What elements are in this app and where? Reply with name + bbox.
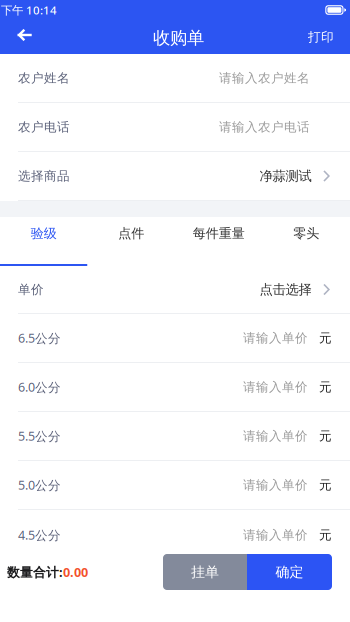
staticText: 请输入农户电话: [219, 119, 310, 135]
staticText: 0.00: [63, 563, 88, 581]
staticText: 打印: [308, 29, 334, 45]
button[interactable]: 点件: [87, 217, 175, 266]
staticText: 点件: [118, 225, 144, 242]
staticText: 农户电话: [18, 119, 70, 135]
staticText: 零头: [293, 225, 319, 242]
staticText: 下午 10:14: [1, 2, 57, 18]
staticText: 请输入单价: [243, 330, 308, 346]
staticText: 5.5公分: [18, 427, 61, 445]
staticText: 请输入单价: [243, 428, 308, 444]
staticText: 6.5公分: [18, 329, 61, 347]
staticText: 选择商品: [18, 168, 70, 184]
button[interactable]: Back: [0, 22, 48, 52]
staticText: 确定: [275, 563, 303, 581]
staticText: 请输入单价: [243, 379, 308, 395]
button[interactable]: 零头: [262, 217, 350, 266]
staticText: 验级: [31, 225, 57, 242]
staticText: 6.0公分: [18, 378, 61, 396]
staticText: 单价: [18, 282, 44, 297]
button[interactable]: 农户姓名: [0, 54, 350, 103]
button[interactable]: 农户电话: [0, 103, 350, 152]
staticText: 请输入单价: [243, 477, 308, 493]
staticText: 点击选择: [259, 281, 311, 298]
staticText: 元: [319, 477, 332, 493]
staticText: 请输入农户姓名: [219, 70, 310, 86]
staticText: 请输入单价: [243, 527, 308, 543]
button[interactable]: 每件重量: [175, 217, 262, 266]
staticText: 净蒜测试: [259, 168, 311, 184]
staticText: 挂单: [191, 563, 219, 581]
button[interactable]: 5.5公分: [0, 412, 350, 461]
button[interactable]: 确定: [247, 554, 332, 590]
staticText: 元: [319, 527, 332, 543]
button[interactable]: 打印: [292, 22, 350, 52]
staticText: 元: [319, 428, 332, 444]
staticText: 数量合计:: [7, 563, 63, 581]
button[interactable]: 6.5公分: [0, 314, 350, 363]
staticText: 每件重量: [193, 225, 245, 242]
button[interactable]: 6.0公分: [0, 363, 350, 412]
button[interactable]: 5.0公分: [0, 461, 350, 510]
button[interactable]: 验级: [0, 217, 87, 266]
staticText: 元: [319, 379, 332, 395]
staticText: 4.5公分: [18, 526, 61, 544]
staticText: 5.0公分: [18, 476, 61, 494]
button[interactable]: 挂单: [163, 554, 247, 590]
button[interactable]: 单价: [0, 266, 350, 314]
button[interactable]: 4.5公分: [0, 510, 350, 548]
button[interactable]: 选择商品: [0, 152, 350, 201]
staticText: 元: [319, 330, 332, 346]
staticText: 农户姓名: [18, 70, 70, 86]
staticText: 收购单: [153, 27, 204, 49]
